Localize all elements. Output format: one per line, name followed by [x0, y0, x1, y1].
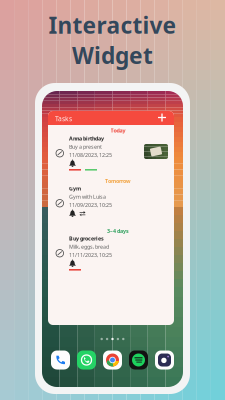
staticText: Gym with Luisa — [69, 193, 106, 200]
staticText: Gym — [69, 185, 81, 192]
button[interactable]: Phone — [51, 350, 70, 369]
staticText: Milk, eggs, bread — [69, 243, 109, 250]
button[interactable]: WhatsApp — [77, 350, 96, 369]
staticText: Buy groceries — [69, 235, 104, 242]
button[interactable]: Buy groceries — [48, 235, 174, 275]
staticText: 3–4 days — [107, 227, 129, 235]
staticText: Tasks — [55, 114, 72, 123]
staticText: 11/08/2023, 12:25 — [69, 151, 112, 158]
staticText: Interactive — [48, 10, 176, 40]
button[interactable]: Gym — [48, 185, 174, 225]
staticText: Tomorrow — [105, 177, 131, 185]
button[interactable]: Camera — [155, 350, 174, 369]
staticText: Anna birthday — [69, 135, 104, 142]
staticText: Today — [110, 127, 125, 134]
staticText: 11/11/2023, 10:25 — [69, 251, 112, 258]
button[interactable]: Add task — [158, 113, 166, 121]
staticText: Widget — [72, 40, 153, 70]
staticText: 11/09/2023, 10:25 — [69, 201, 112, 208]
button[interactable]: Spotify — [129, 350, 148, 369]
button[interactable]: Chrome — [103, 350, 122, 369]
button[interactable]: Anna birthday — [48, 135, 174, 175]
staticText: Buy a present — [69, 143, 102, 150]
